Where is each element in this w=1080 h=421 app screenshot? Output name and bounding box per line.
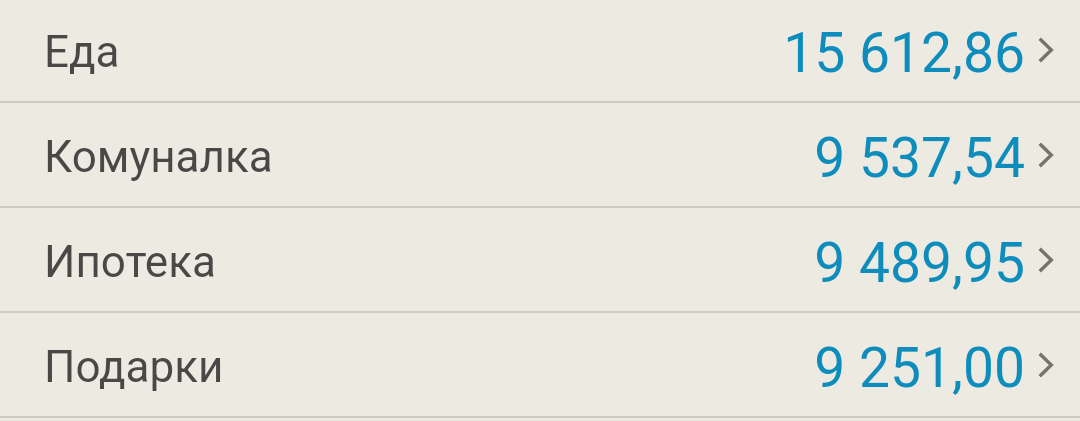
other: Открыть Подарки (1038, 312, 1053, 417)
staticText: Подарки (44, 341, 224, 393)
staticText: Еда (44, 26, 120, 78)
staticText: 9 251,00 (814, 336, 1025, 401)
staticText: Комуналка (44, 131, 273, 183)
button[interactable]: Комуналка (0, 101, 1080, 206)
button[interactable]: Ипотека (0, 206, 1080, 311)
other: Открыть Ипотека (1038, 207, 1053, 312)
other: Открыть Еда (1038, 0, 1053, 102)
other: Открыть Комуналка (1038, 102, 1053, 207)
staticText: Ипотека (44, 236, 216, 288)
staticText: 15 612,86 (783, 21, 1025, 86)
button[interactable]: Подарки (0, 311, 1080, 416)
staticText: 9 537,54 (814, 126, 1025, 191)
staticText: 9 489,95 (814, 231, 1025, 296)
button[interactable]: Еда (0, 0, 1080, 101)
